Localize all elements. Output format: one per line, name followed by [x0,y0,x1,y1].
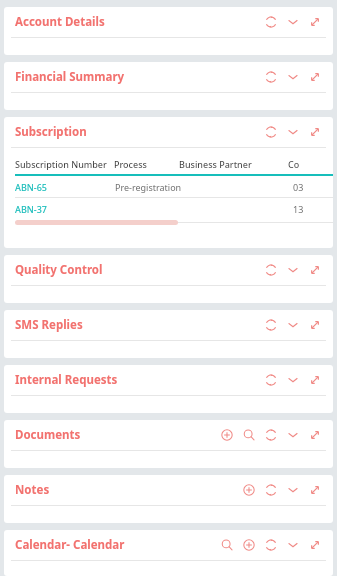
button[interactable]: Refresh [260,11,282,33]
button[interactable]: Refresh [260,314,282,336]
button[interactable]: Expand full screen [304,424,326,446]
staticText: Account Details [15,14,256,30]
staticText: 03 [293,181,304,193]
button[interactable]: Notes [4,475,333,523]
button[interactable]: Expand full screen [304,66,326,88]
button[interactable]: Collapse [282,259,304,281]
button[interactable]: Refresh [260,259,282,281]
button[interactable]: Collapse [282,369,304,391]
staticText: 13 [293,203,304,215]
button[interactable]: Collapse [282,479,304,501]
button[interactable]: ABN-37 [15,198,333,219]
button[interactable]: Expand full screen [304,534,326,556]
staticText: Quality Control [15,262,256,278]
staticText: Business Partner [179,158,252,170]
staticText: SMS Replies [15,317,256,333]
staticText: Subscription Number [15,158,107,170]
button[interactable]: Quality Control [4,255,333,303]
button[interactable]: Refresh [260,479,282,501]
button[interactable]: Financial Summary [4,62,333,110]
button[interactable]: Expand full screen [304,369,326,391]
button[interactable]: Refresh [260,424,282,446]
staticText: Calendar- Calendar [15,537,212,553]
button[interactable]: Collapse [282,66,304,88]
button[interactable]: Search [216,534,238,556]
button[interactable]: Refresh [260,534,282,556]
button[interactable]: Refresh [260,369,282,391]
button[interactable]: Collapse [282,11,304,33]
button[interactable]: Internal Requests [4,365,333,413]
button[interactable]: Collapse [282,121,304,143]
staticText: ABN-65 [15,181,47,193]
staticText: ABN-37 [15,203,47,215]
button[interactable]: Documents [4,420,333,468]
button[interactable]: Add [238,479,260,501]
staticText: Internal Requests [15,372,256,388]
button[interactable]: Expand full screen [304,479,326,501]
button[interactable]: Calendar- Calendar [4,530,333,576]
button[interactable]: Collapse [282,424,304,446]
button[interactable]: Add [216,424,238,446]
button[interactable]: Subscription [4,117,333,248]
button[interactable]: Collapse [282,314,304,336]
button[interactable]: Search [238,424,260,446]
staticText: Notes [15,482,234,498]
button[interactable]: Collapse [282,534,304,556]
button[interactable]: Add [238,534,260,556]
staticText: Financial Summary [15,69,256,85]
button[interactable]: SMS Replies [4,310,333,358]
button[interactable]: Expand full screen [304,11,326,33]
button[interactable]: ABN-65 [15,176,333,197]
staticText: Co [288,158,300,170]
button[interactable]: Expand full screen [304,314,326,336]
button[interactable]: Refresh [260,121,282,143]
staticText: Subscription [15,124,256,140]
button[interactable]: Expand full screen [304,121,326,143]
button[interactable]: Account Details [4,7,333,55]
staticText: Process [114,158,147,170]
button[interactable]: Refresh [260,66,282,88]
staticText: Documents [15,427,212,443]
staticText: Pre-registration [115,181,182,193]
button[interactable]: Expand full screen [304,259,326,281]
